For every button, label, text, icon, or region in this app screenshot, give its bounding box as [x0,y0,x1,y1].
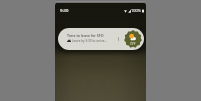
button[interactable]: Time to leave for SFO [58,28,144,50]
staticText: 100% [131,8,141,13]
staticText: 9:30 [60,8,69,14]
button[interactable]: Expand notification [115,34,121,44]
staticText: Leave by 9:30 to arrive... [72,39,108,43]
button[interactable]: Weather, 73 degrees [124,30,142,48]
staticText: 73°F [130,42,136,46]
staticText: Time to leave for SFO [67,33,104,38]
